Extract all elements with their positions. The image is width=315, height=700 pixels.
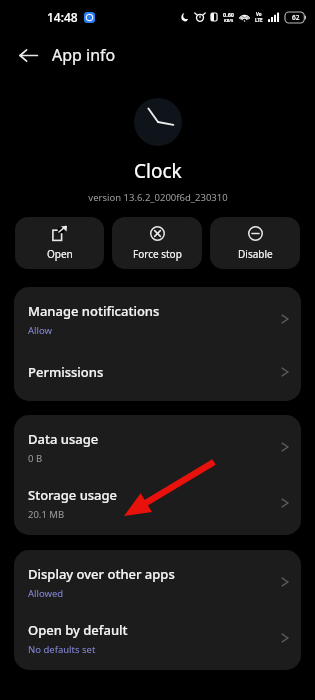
button[interactable]: Disable	[210, 217, 300, 269]
staticText: Data usage	[28, 430, 99, 448]
button[interactable]: Force stop	[112, 217, 202, 269]
staticText: 0 B	[28, 452, 43, 465]
staticText: Force stop	[133, 247, 182, 261]
staticText: 62	[292, 13, 300, 22]
staticText: Storage usage	[28, 486, 118, 504]
staticText: Disable	[238, 247, 273, 261]
button[interactable]: Permissions	[14, 347, 301, 397]
button[interactable]: Data usage	[14, 419, 301, 475]
staticText: LTE	[255, 17, 263, 23]
staticText: Vo	[256, 11, 262, 17]
staticText: Allow	[28, 324, 52, 337]
staticText: 14:48	[47, 9, 78, 25]
button[interactable]: Storage usage	[14, 475, 301, 531]
staticText: App info	[52, 44, 116, 66]
staticText: Open	[47, 247, 73, 261]
button[interactable]: Display over other apps	[14, 554, 301, 610]
button[interactable]: Open by default	[14, 610, 301, 666]
staticText: No defaults set	[28, 643, 96, 656]
staticText: Display over other apps	[28, 565, 175, 583]
staticText: version 13.6.2_0200f6d_230310	[88, 191, 228, 204]
staticText: 20.1 MB	[28, 508, 65, 521]
button[interactable]: Open	[15, 217, 104, 269]
staticText: 0.60	[223, 11, 234, 18]
staticText: Open by default	[28, 621, 128, 639]
staticText: Permissions	[28, 363, 104, 381]
staticText: Manage notifications	[28, 302, 160, 320]
button[interactable]: Back	[10, 37, 46, 73]
button[interactable]: Manage notifications	[14, 291, 301, 347]
staticText: KB/S	[224, 18, 234, 23]
staticText: Clock	[134, 158, 182, 184]
staticText: Allowed	[28, 587, 64, 600]
